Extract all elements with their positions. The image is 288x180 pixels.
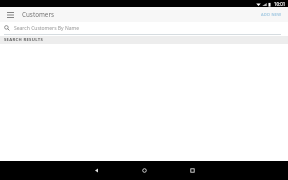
button[interactable]: Recent apps [179, 161, 205, 180]
staticText: 10:01 [274, 1, 286, 7]
staticText: ADD NEW [261, 12, 282, 17]
staticText: Customers [22, 10, 55, 19]
staticText: SEARCH RESULTS [4, 37, 44, 43]
staticText: Search Customers By Name [14, 25, 80, 32]
button[interactable]: Home [131, 161, 157, 180]
button[interactable]: Back [83, 161, 109, 180]
button[interactable]: ADD NEW [259, 8, 284, 21]
button[interactable]: Open navigation drawer [4, 8, 17, 21]
button[interactable]: Search Customers By Name [0, 22, 288, 36]
